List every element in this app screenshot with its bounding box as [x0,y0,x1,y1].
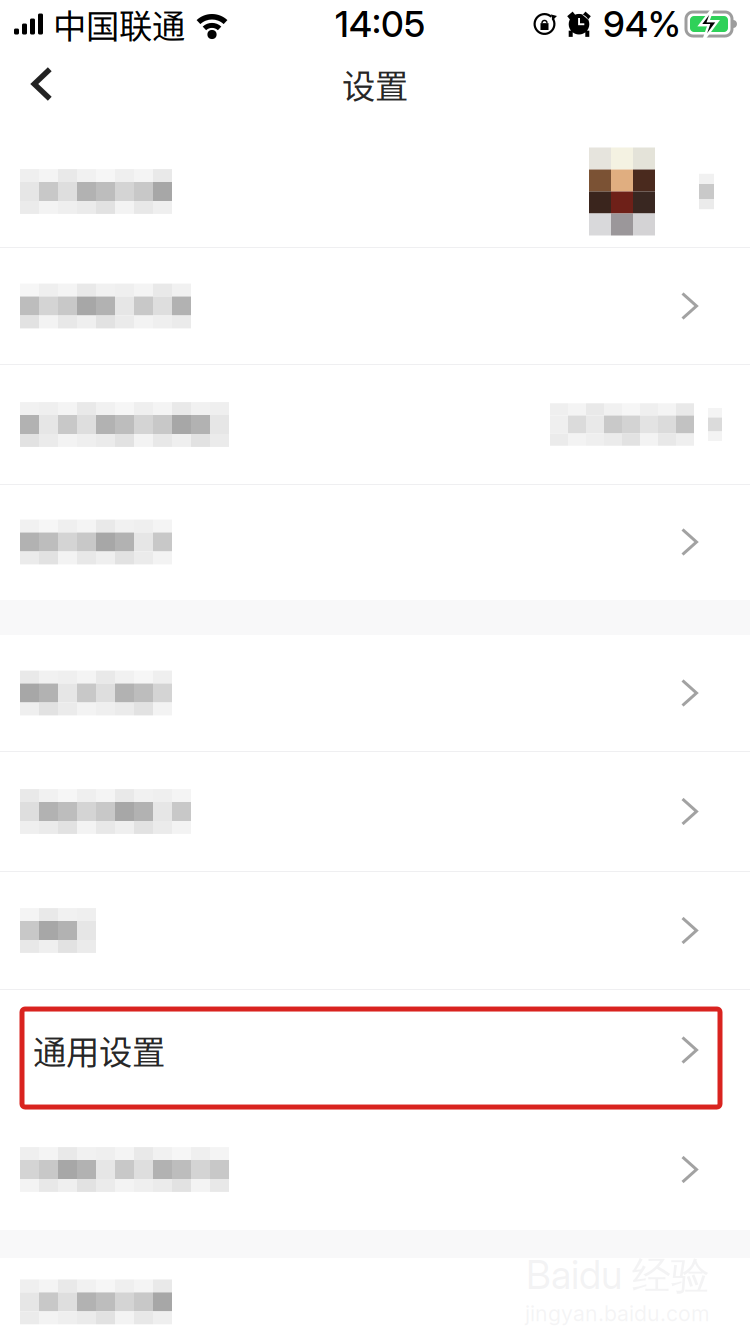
button[interactable] [0,365,750,485]
button[interactable] [0,752,750,872]
button[interactable] [0,485,750,600]
staticText: 14:05 [335,2,425,46]
staticText: 设置 [342,60,408,108]
button[interactable] [0,1110,750,1230]
button[interactable] [0,635,750,752]
button[interactable]: 通用设置 [0,990,750,1110]
button[interactable] [0,248,750,365]
staticText: jingyan.baidu.com [525,1301,710,1326]
staticText: 中国联通 [53,0,185,48]
button[interactable] [0,120,750,248]
button[interactable]: Back [0,48,84,120]
button[interactable] [0,872,750,990]
staticText: Baidu 经验 [526,1252,710,1300]
button[interactable] [0,1264,750,1334]
staticText: 通用设置 [33,1026,165,1074]
staticText: 94% [603,2,681,46]
